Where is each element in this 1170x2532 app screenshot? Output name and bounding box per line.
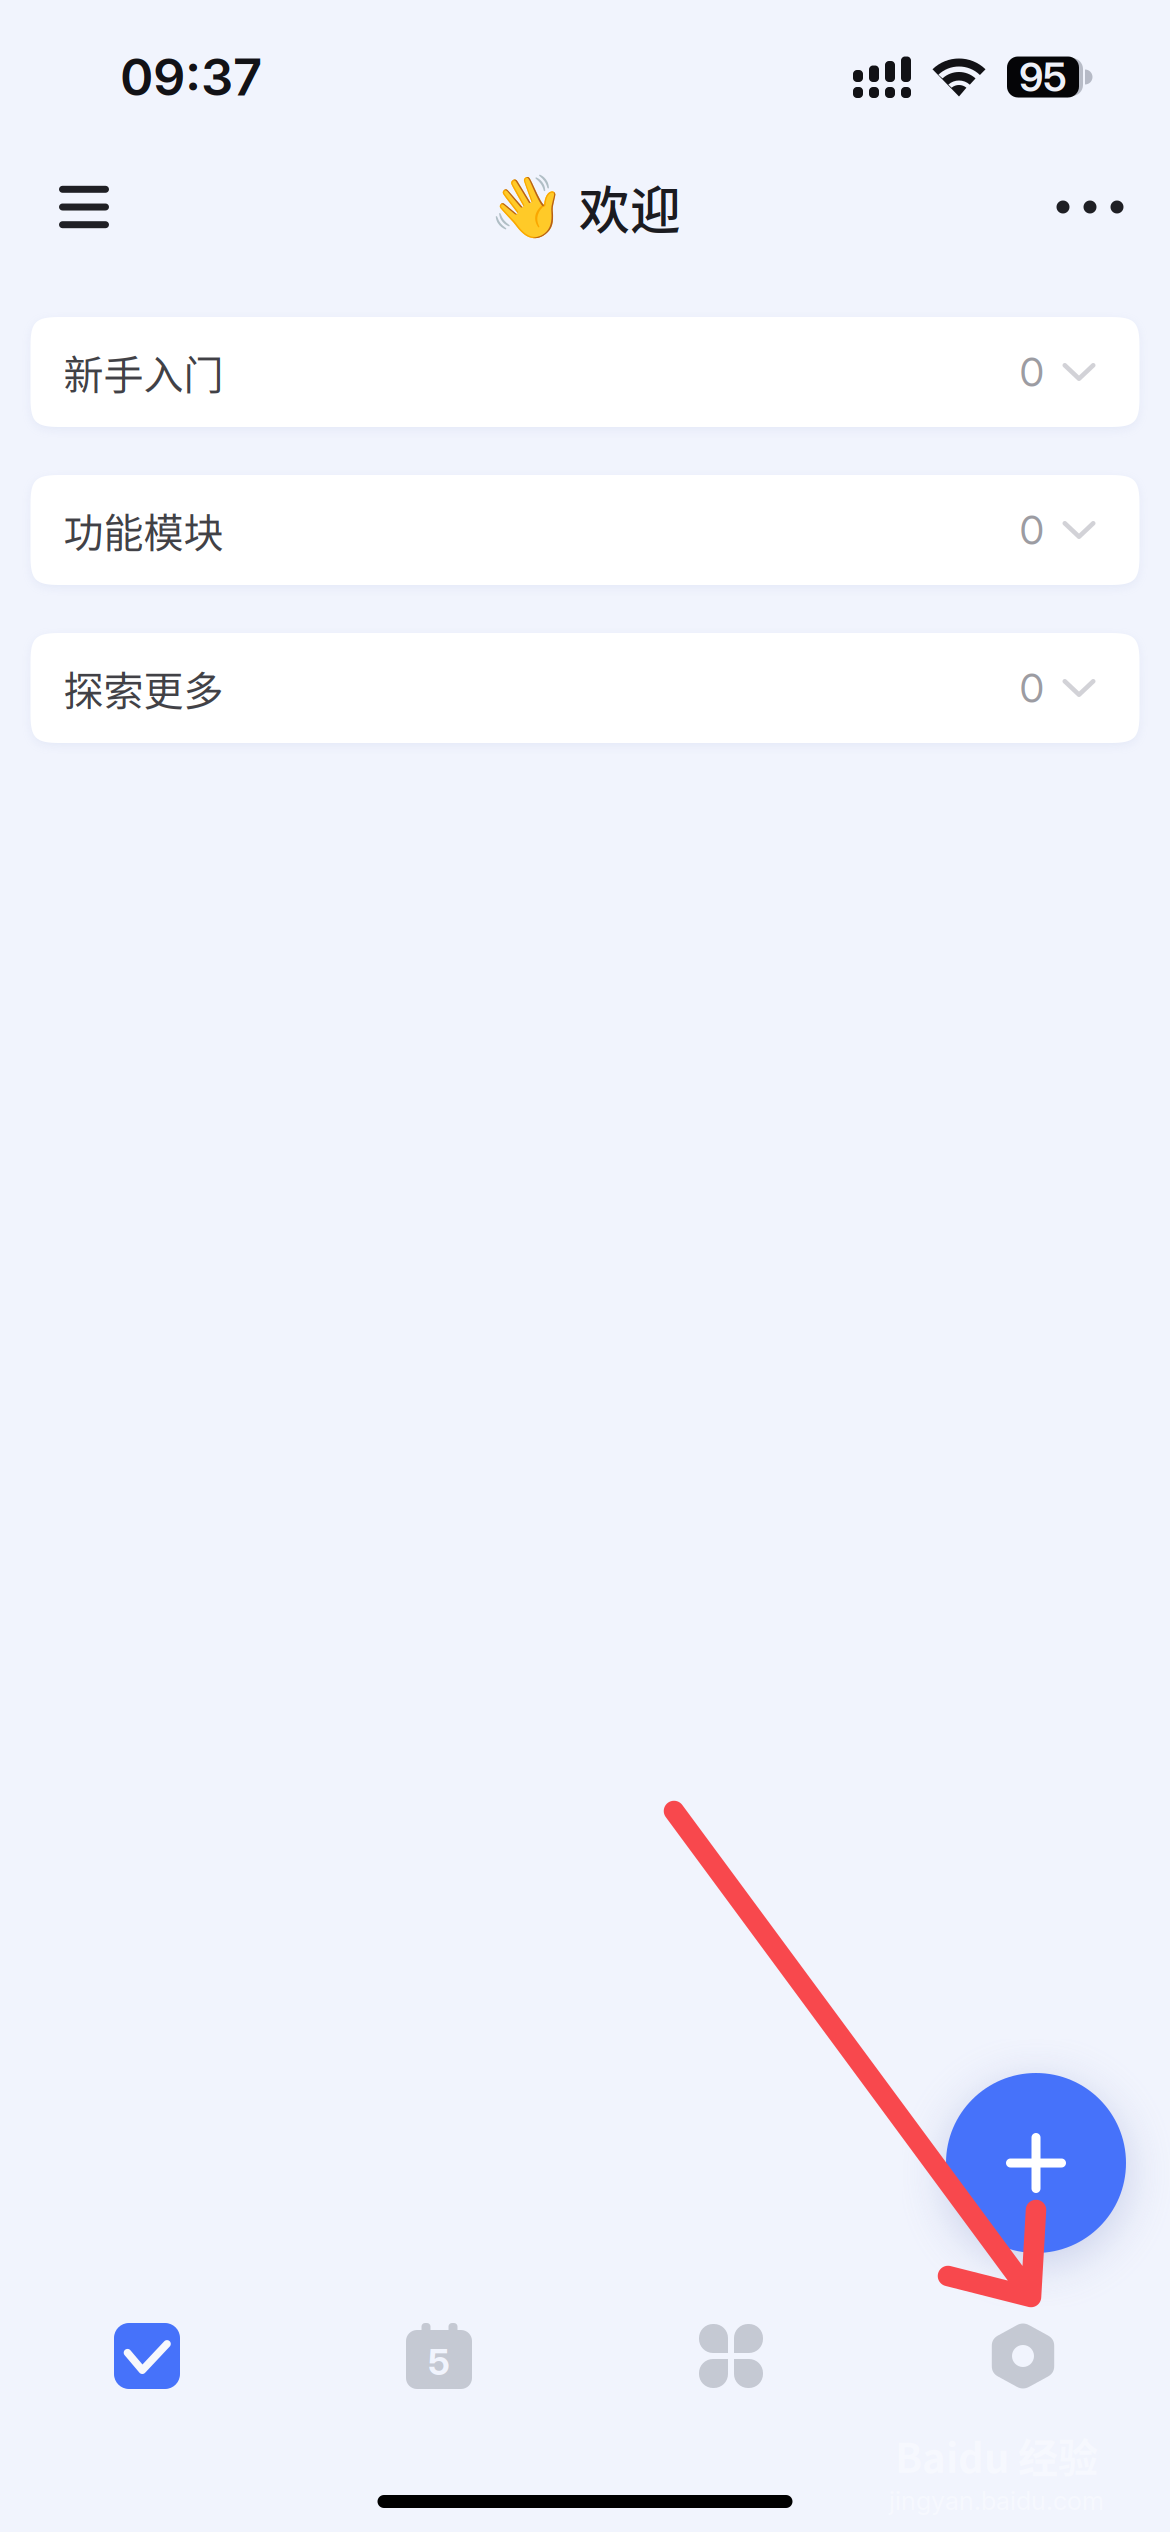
button[interactable]: Menu (29, 152, 139, 262)
staticText: 09:37 (120, 46, 262, 108)
button[interactable]: Modules (585, 2311, 877, 2401)
staticText: 欢迎 (579, 170, 681, 244)
button[interactable]: Settings (877, 2311, 1169, 2401)
staticText: 5 (428, 2340, 450, 2384)
button[interactable]: Add (946, 2073, 1126, 2253)
staticText: 探索更多 (63, 659, 223, 717)
staticText: 95 (1019, 53, 1067, 101)
staticText: 0 (1019, 506, 1044, 554)
button[interactable]: More options (1035, 152, 1145, 262)
button[interactable]: 新手入门 (30, 317, 1139, 427)
button[interactable]: 探索更多 (30, 633, 1139, 743)
button[interactable]: 功能模块 (30, 475, 1139, 585)
button[interactable]: Tasks (1, 2311, 293, 2401)
staticText: 0 (1019, 664, 1044, 712)
staticText: 新手入门 (63, 343, 223, 401)
staticText: 功能模块 (63, 501, 223, 559)
button[interactable]: Calendar (293, 2311, 585, 2401)
staticText: 0 (1019, 348, 1044, 396)
staticText: 👋 (489, 171, 565, 243)
